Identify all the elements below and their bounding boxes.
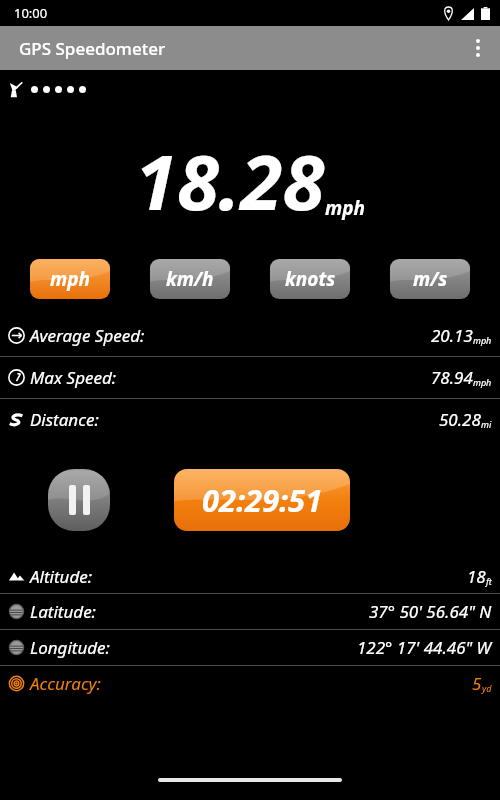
staticText: yd: [482, 682, 492, 694]
staticText: GPS Speedometer: [19, 37, 166, 60]
staticText: m/s: [413, 266, 448, 292]
button[interactable]: Distance:: [0, 399, 500, 440]
staticText: Max Speed:: [30, 366, 117, 389]
button[interactable]: Pause: [48, 469, 110, 531]
staticText: km/h: [166, 266, 214, 292]
staticText: mph: [473, 334, 492, 346]
button[interactable]: Average Speed:: [0, 315, 500, 356]
staticText: Accuracy:: [30, 672, 101, 695]
button[interactable]: mph: [30, 259, 110, 299]
staticText: Average Speed:: [30, 324, 145, 347]
staticText: ft: [486, 575, 492, 587]
button[interactable]: Longitude:: [0, 630, 500, 665]
staticText: Latitude:: [30, 600, 96, 623]
staticText: 5: [472, 672, 482, 695]
staticText: 37° 50' 56.64" N: [369, 600, 492, 623]
staticText: 20.13: [431, 324, 473, 347]
staticText: Distance:: [30, 408, 99, 431]
staticText: mph: [473, 376, 492, 388]
staticText: 50.28: [439, 408, 481, 431]
staticText: mph: [50, 266, 90, 292]
staticText: mph: [325, 195, 365, 221]
staticText: 18: [467, 565, 486, 588]
staticText: 78.94: [431, 366, 473, 389]
button[interactable]: Latitude:: [0, 594, 500, 629]
staticText: Altitude:: [30, 565, 93, 588]
staticText: mi: [481, 418, 492, 430]
button[interactable]: 02:29:51: [174, 469, 350, 531]
button[interactable]: knots: [270, 259, 350, 299]
staticText: 18.28: [135, 129, 325, 233]
staticText: 10:00: [14, 4, 48, 22]
button[interactable]: km/h: [150, 259, 230, 299]
button[interactable]: More options: [456, 26, 500, 70]
staticText: knots: [285, 266, 336, 292]
button[interactable]: Altitude:: [0, 560, 500, 593]
button[interactable]: m/s: [390, 259, 470, 299]
staticText: 122° 17' 44.46" W: [357, 636, 492, 659]
button[interactable]: Accuracy:: [0, 666, 500, 701]
staticText: Longitude:: [30, 636, 110, 659]
staticText: 02:29:51: [202, 479, 323, 521]
button[interactable]: Max Speed:: [0, 357, 500, 398]
